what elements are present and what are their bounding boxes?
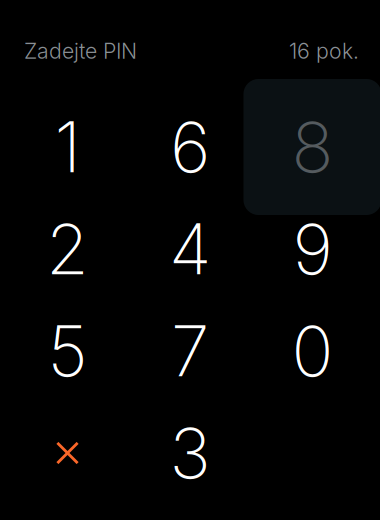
staticText: 6 (170, 105, 210, 189)
staticText: 16 pok. (289, 38, 359, 64)
button[interactable]: 8 (251, 96, 374, 198)
button[interactable]: 1 (6, 96, 129, 198)
staticText: 8 (291, 105, 333, 189)
staticText: 0 (291, 309, 333, 393)
staticText: Zadejte PIN (24, 38, 137, 64)
staticText: 5 (47, 309, 87, 393)
button[interactable]: 6 (129, 96, 251, 198)
staticText: 3 (169, 411, 210, 495)
button[interactable]: 9 (251, 198, 374, 300)
staticText: 7 (171, 309, 209, 393)
button[interactable]: Delete (6, 402, 129, 504)
button[interactable]: 0 (251, 300, 374, 402)
staticText: 2 (46, 207, 89, 291)
staticText: 9 (292, 207, 332, 291)
button[interactable]: 3 (129, 402, 251, 504)
staticText: 1 (54, 105, 80, 189)
staticText: 4 (169, 207, 211, 291)
button[interactable]: 4 (129, 198, 251, 300)
button[interactable]: 5 (6, 300, 129, 402)
button[interactable]: 2 (6, 198, 129, 300)
button[interactable]: 7 (129, 300, 251, 402)
